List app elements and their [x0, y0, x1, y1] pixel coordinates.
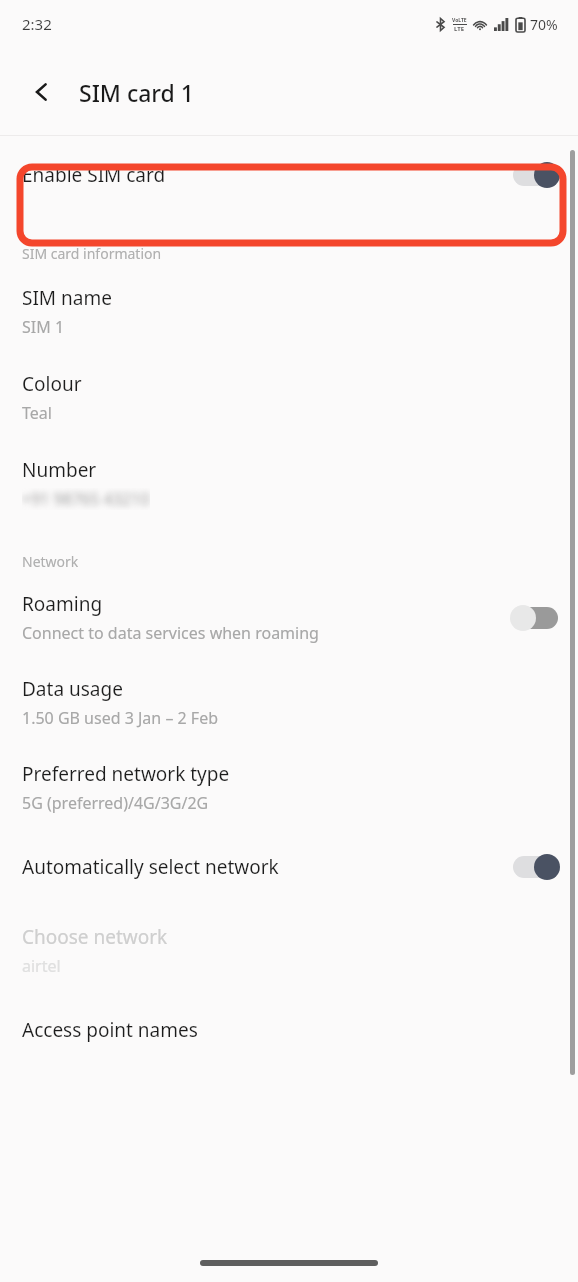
button[interactable]: SIM name	[0, 263, 578, 338]
staticText: Network	[22, 552, 578, 571]
staticText: Teal	[22, 402, 52, 424]
button[interactable]: Colour	[0, 338, 578, 424]
staticText: Preferred network type	[22, 761, 230, 787]
button[interactable]: Preferred network type	[0, 729, 578, 814]
staticText: Access point names	[22, 1017, 198, 1043]
staticText: Automatically select network	[22, 854, 279, 880]
staticText: Data usage	[22, 676, 123, 702]
staticText: SIM name	[22, 285, 112, 311]
button[interactable]: Roaming	[0, 571, 578, 644]
button[interactable]: Automatically select network	[0, 814, 578, 894]
staticText: Colour	[22, 371, 82, 397]
staticText: 70%	[530, 15, 558, 34]
button[interactable]: Access point names	[0, 977, 578, 1043]
button[interactable]: Back	[22, 72, 62, 112]
button[interactable]: Data usage	[0, 644, 578, 729]
staticText: SIM 1	[22, 316, 65, 338]
staticText: airtel	[22, 955, 61, 977]
staticText: 5G (preferred)/4G/3G/2G	[22, 792, 209, 814]
button[interactable]: Enable SIM card	[0, 136, 578, 214]
staticText: Choose network	[22, 924, 168, 950]
button[interactable]: Choose network	[0, 894, 578, 977]
staticText: VoLTE	[452, 17, 467, 24]
staticText: Enable SIM card	[22, 162, 510, 188]
staticText: Connect to data services when roaming	[22, 622, 319, 644]
staticText: +91 98765 43210	[22, 488, 150, 510]
staticText: Roaming	[22, 591, 103, 617]
staticText: LTE	[454, 25, 465, 33]
staticText: Number	[22, 457, 97, 483]
staticText: 2:32	[22, 14, 52, 34]
staticText: SIM card information	[22, 244, 578, 263]
button[interactable]: Number	[0, 424, 578, 510]
staticText: SIM card 1	[79, 77, 194, 108]
staticText: 1.50 GB used 3 Jan – 2 Feb	[22, 707, 219, 729]
